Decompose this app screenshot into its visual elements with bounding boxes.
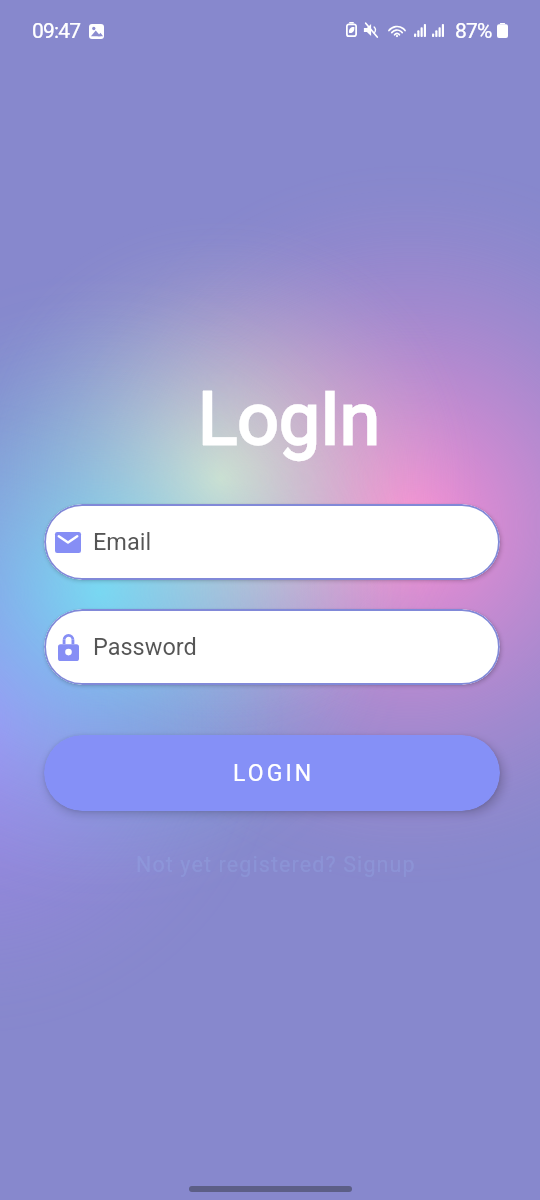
- staticText: LOGIN: [233, 760, 315, 787]
- staticText: Not yet registered? Signup: [136, 852, 416, 877]
- staticText: 09:47: [32, 19, 81, 44]
- staticText: 87%: [455, 19, 492, 44]
- staticText: LogIn: [198, 376, 381, 462]
- staticText: Password: [93, 633, 197, 661]
- button[interactable]: Password: [44, 609, 500, 685]
- button[interactable]: Email: [44, 504, 500, 580]
- button[interactable]: Not yet registered? Signup: [130, 852, 410, 877]
- staticText: Email: [93, 528, 152, 556]
- button[interactable]: LOGIN: [44, 735, 500, 811]
